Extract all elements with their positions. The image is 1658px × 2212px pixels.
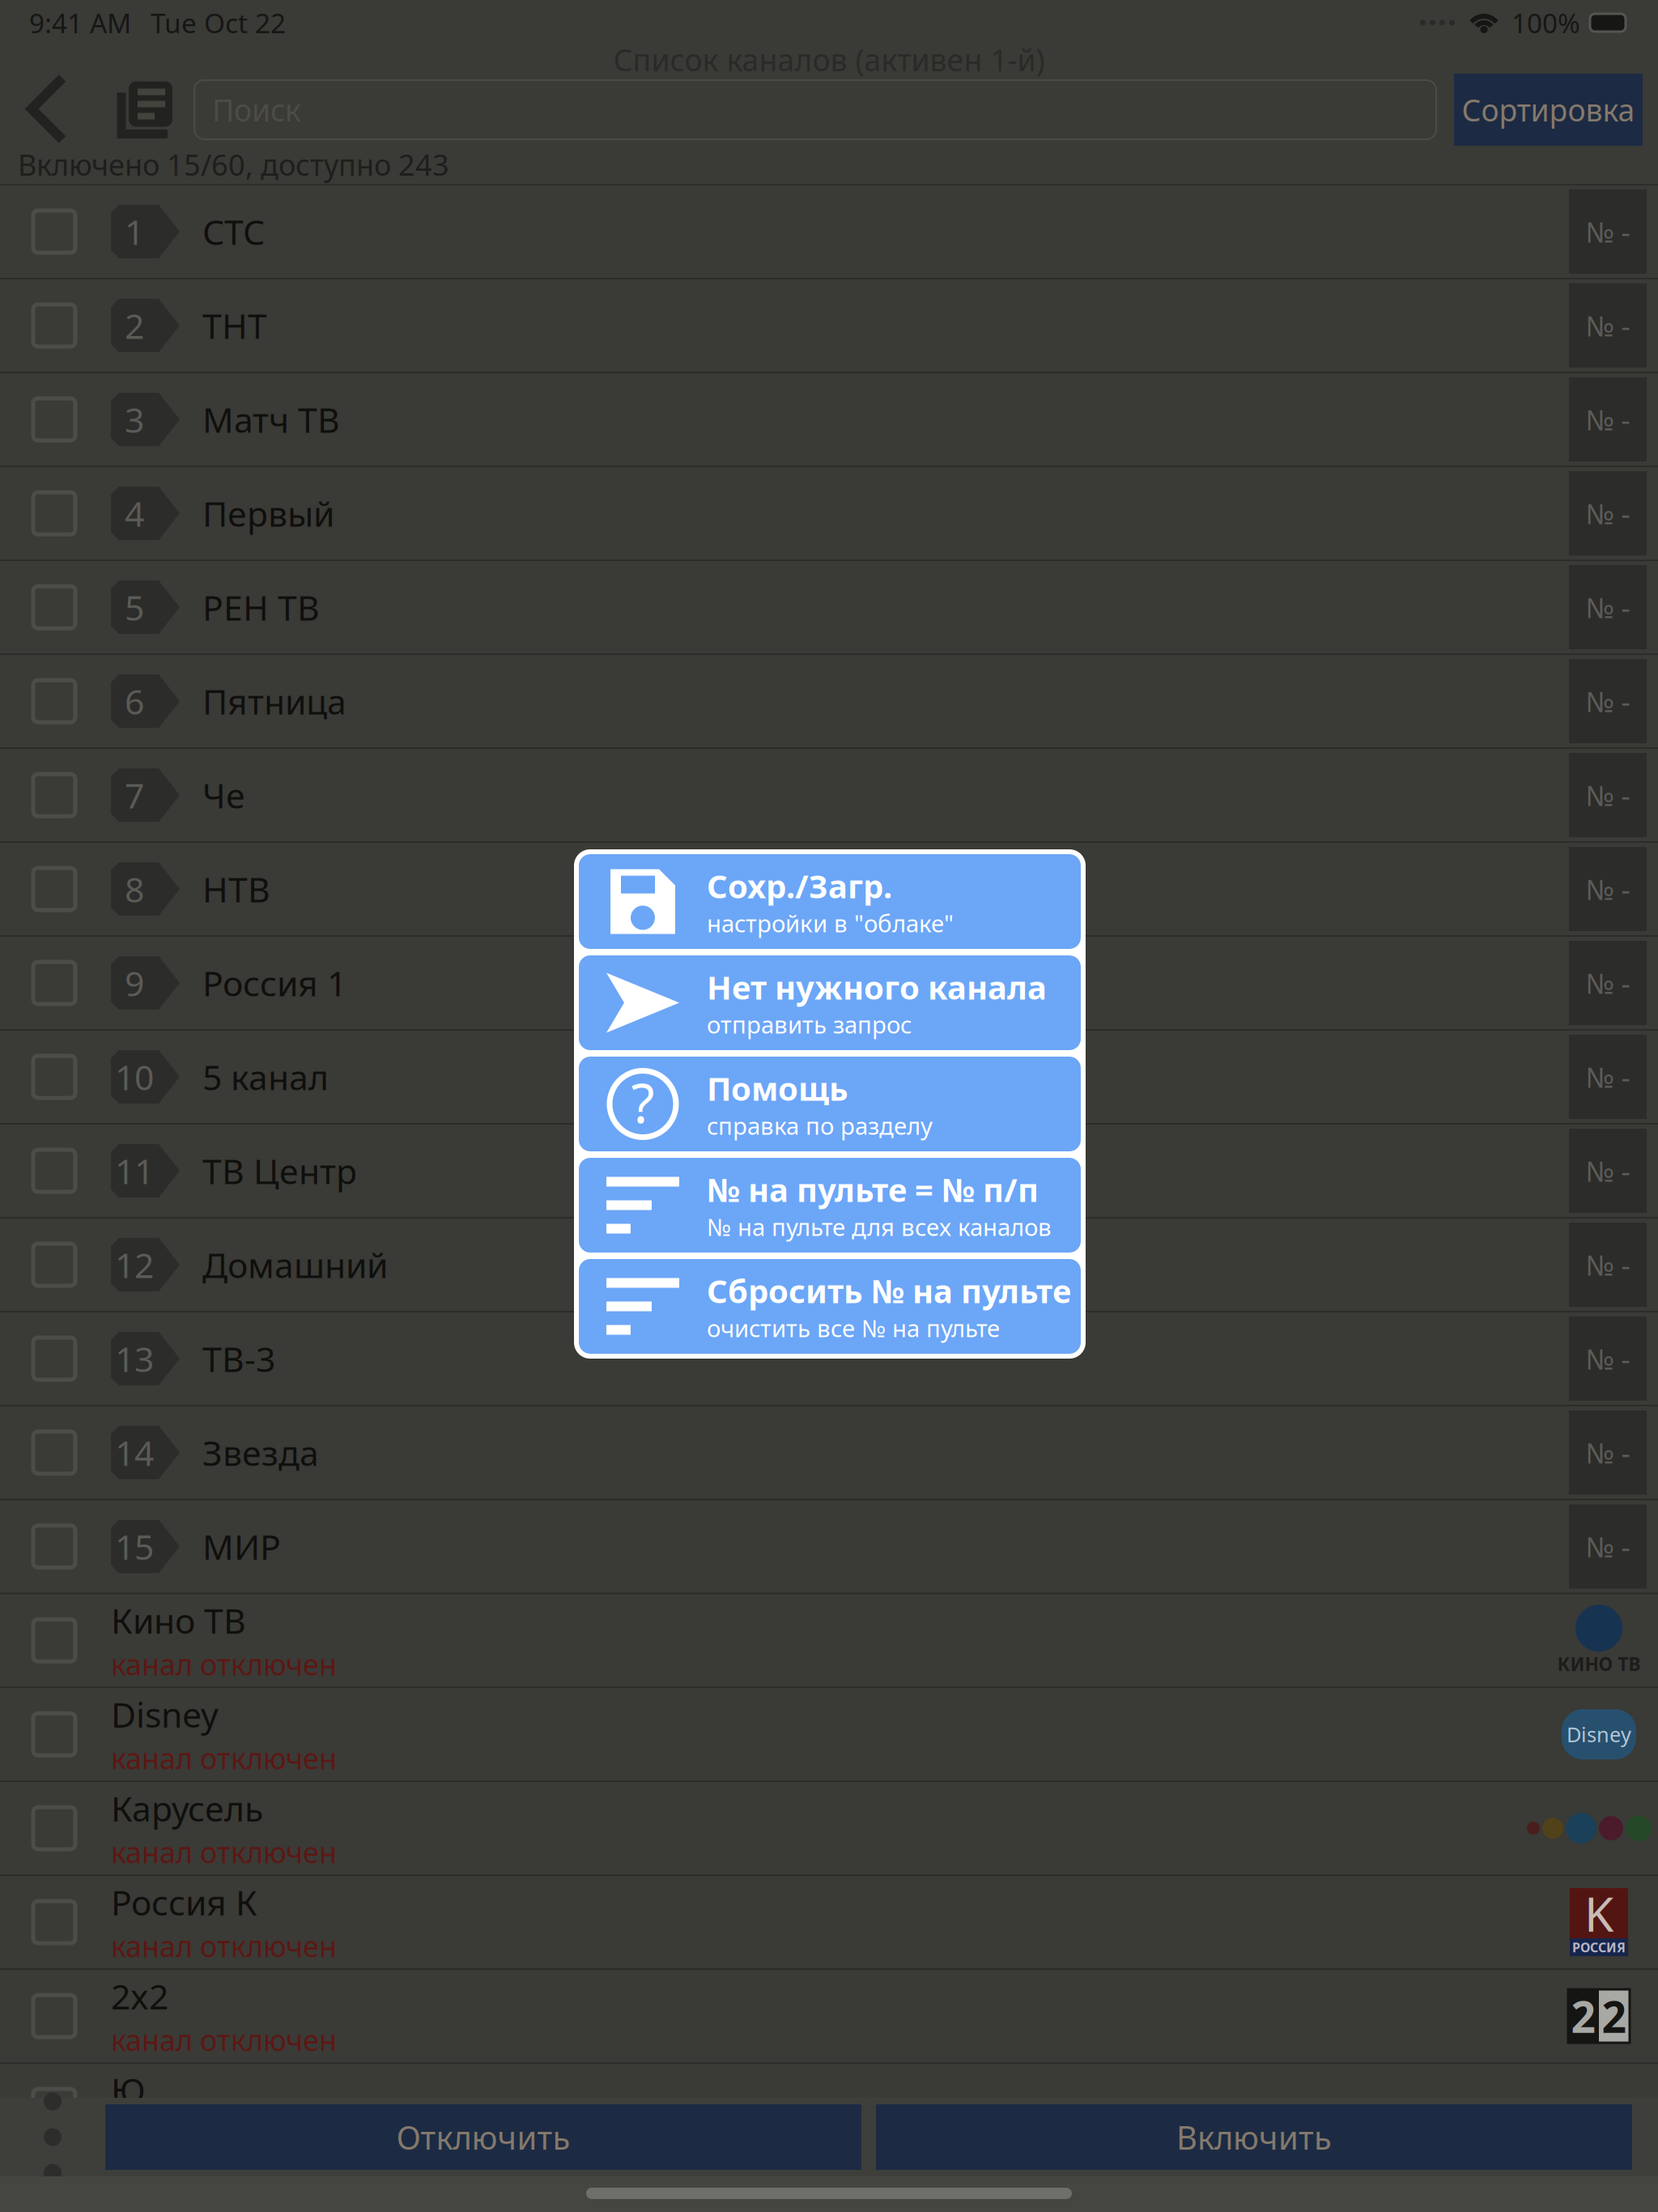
button[interactable]: 13	[0, 1312, 1658, 1406]
staticText: справка по разделу	[707, 1110, 933, 1141]
staticText: РЕН ТВ	[202, 584, 320, 630]
button[interactable]: Disney	[0, 1688, 1658, 1782]
staticText: канал отключен	[111, 1739, 337, 1777]
staticText: 8	[125, 866, 144, 912]
button[interactable]: 8	[0, 843, 1658, 937]
button[interactable]: Нет нужного канала	[579, 955, 1081, 1050]
button[interactable]: Включить	[876, 2104, 1632, 2170]
button[interactable]: 7	[0, 749, 1658, 843]
staticText: ТВ-3	[202, 1336, 275, 1382]
button[interactable]: № на пульте = № п/п	[579, 1158, 1081, 1253]
button[interactable]: 10	[0, 1031, 1658, 1125]
staticText: Пятница	[202, 678, 346, 724]
staticText: 2	[125, 303, 144, 348]
button[interactable]: Кино ТВ	[0, 1594, 1658, 1688]
staticText: отправить запрос	[707, 1009, 912, 1040]
staticText: № -	[1586, 1058, 1630, 1095]
staticText: КИНО ТВ	[1557, 1652, 1641, 1676]
staticText: № -	[1586, 1528, 1630, 1565]
staticText: № -	[1586, 307, 1630, 344]
staticText: 4	[125, 490, 144, 536]
button[interactable]: 5	[0, 561, 1658, 655]
button[interactable]: 1	[0, 185, 1658, 279]
staticText: Сбросить № на пульте	[707, 1269, 1071, 1312]
button[interactable]: Отключить	[105, 2104, 861, 2170]
staticText: ТВ Центр	[202, 1148, 357, 1194]
button[interactable]: Ю	[0, 2064, 1658, 2156]
button[interactable]: Сортировка	[1454, 74, 1643, 146]
button[interactable]: Сбросить № на пульте	[579, 1259, 1081, 1354]
button[interactable]: Карусель	[0, 1782, 1658, 1876]
staticText: канал отключен	[111, 1645, 337, 1683]
button[interactable]: Channel lists	[96, 74, 194, 146]
staticText: Поиск	[212, 90, 301, 130]
staticText: № -	[1586, 1340, 1630, 1377]
staticText: № -	[1586, 495, 1630, 532]
staticText: очистить все № на пульте	[707, 1312, 1000, 1344]
staticText: 7	[125, 772, 144, 818]
staticText: № -	[1586, 401, 1630, 438]
staticText: 15	[115, 1524, 154, 1569]
staticText: 100%	[1511, 5, 1580, 41]
staticText: МИР	[202, 1524, 281, 1569]
button[interactable]: 12	[0, 1219, 1658, 1312]
staticText: 5	[125, 584, 144, 630]
staticText: СТС	[202, 209, 265, 255]
staticText: Сортировка	[1462, 90, 1635, 130]
staticText: ТНТ	[202, 303, 267, 348]
staticText: 10	[115, 1054, 154, 1100]
button[interactable]: Россия К	[0, 1876, 1658, 1970]
staticText: Tue Oct 22	[151, 5, 286, 41]
staticText: № -	[1586, 1246, 1630, 1283]
staticText: 6	[125, 678, 144, 724]
staticText: Че	[202, 772, 245, 818]
button[interactable]: 3	[0, 373, 1658, 467]
button[interactable]: 4	[0, 467, 1658, 561]
staticText: 2x2	[111, 1973, 168, 2019]
staticText: 14	[115, 1430, 154, 1476]
staticText: Сохр./Загр.	[707, 864, 892, 907]
button[interactable]: Back	[0, 74, 96, 146]
staticText: Россия 1	[202, 960, 346, 1006]
staticText: № -	[1586, 1152, 1630, 1189]
staticText: Список каналов (активен 1-й)	[613, 39, 1045, 80]
button[interactable]: Сохр./Загр.	[579, 854, 1081, 949]
staticText: Отключить	[396, 2116, 570, 2159]
staticText: ?	[631, 1066, 655, 1138]
staticText: № на пульте = № п/п	[707, 1168, 1039, 1211]
staticText: Ю	[111, 2067, 146, 2113]
button[interactable]: 11	[0, 1125, 1658, 1219]
staticText: Помощь	[707, 1067, 848, 1110]
staticText: настройки в "облаке"	[707, 907, 954, 939]
staticText: № -	[1586, 964, 1630, 1002]
staticText: Матч ТВ	[202, 396, 340, 442]
staticText: 5 канал	[202, 1054, 329, 1100]
button[interactable]: 2x2	[0, 1970, 1658, 2064]
staticText: Звезда	[202, 1430, 319, 1476]
staticText: № -	[1586, 589, 1630, 626]
staticText: Домашний	[202, 1242, 388, 1288]
staticText: Первый	[202, 490, 334, 536]
button[interactable]: 9	[0, 937, 1658, 1031]
staticText: № на пульте для всех каналов	[707, 1211, 1052, 1243]
staticText: канал отключен	[111, 1927, 337, 1965]
staticText: канал отключен	[111, 2020, 337, 2059]
button[interactable]: 14	[0, 1406, 1658, 1500]
staticText: 9	[125, 960, 144, 1006]
staticText: НТВ	[202, 866, 270, 912]
staticText: Россия К	[111, 1879, 257, 1925]
staticText: Включить	[1176, 2116, 1332, 2159]
staticText: Карусель	[111, 1785, 263, 1831]
button[interactable]: 6	[0, 655, 1658, 749]
staticText: № -	[1586, 683, 1630, 720]
button[interactable]: More options	[0, 2098, 105, 2176]
staticText: № -	[1586, 1434, 1630, 1471]
staticText: 2	[1602, 1987, 1627, 2045]
button[interactable]: 2	[0, 279, 1658, 373]
staticText: № -	[1586, 870, 1630, 908]
button[interactable]: ?	[579, 1057, 1081, 1151]
button[interactable]: 15	[0, 1500, 1658, 1594]
staticText: 1	[125, 209, 144, 255]
staticText: 3	[125, 396, 144, 442]
